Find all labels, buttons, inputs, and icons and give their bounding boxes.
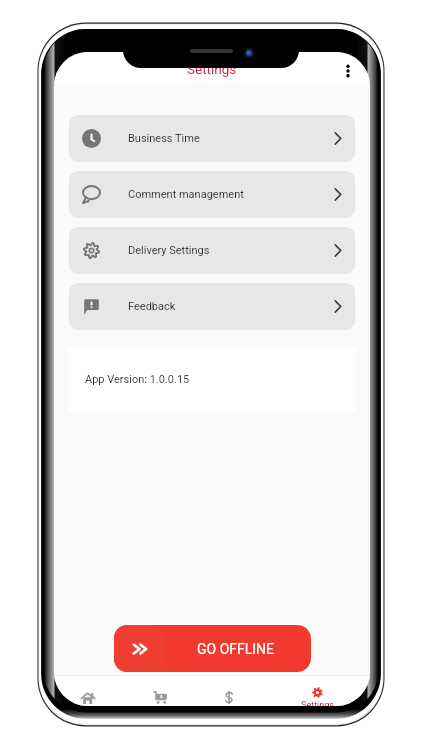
staticText: Business Time	[128, 132, 200, 145]
staticText: GO OFFLINE	[197, 641, 275, 657]
button[interactable]: Orders	[137, 683, 184, 706]
staticText: Comment management	[128, 188, 244, 201]
button[interactable]: Comment management	[69, 171, 355, 218]
button[interactable]: Feedback	[69, 283, 355, 330]
button[interactable]: GO OFFLINE	[114, 625, 311, 672]
staticText: Feedback	[128, 300, 176, 313]
staticText: App Version: 1.0.0.15	[85, 373, 190, 386]
button[interactable]: More options	[334, 57, 362, 85]
staticText: Delivery Settings	[128, 244, 210, 257]
button[interactable]: Business Time	[69, 115, 355, 162]
button[interactable]: Earnings	[209, 683, 249, 706]
button[interactable]: Settings	[282, 687, 352, 706]
button[interactable]: Slide to go offline	[114, 625, 165, 672]
button[interactable]: Delivery Settings	[69, 227, 355, 274]
button[interactable]: Home	[65, 684, 111, 706]
staticText: Settings	[187, 61, 237, 77]
staticText: Settings	[301, 700, 334, 706]
